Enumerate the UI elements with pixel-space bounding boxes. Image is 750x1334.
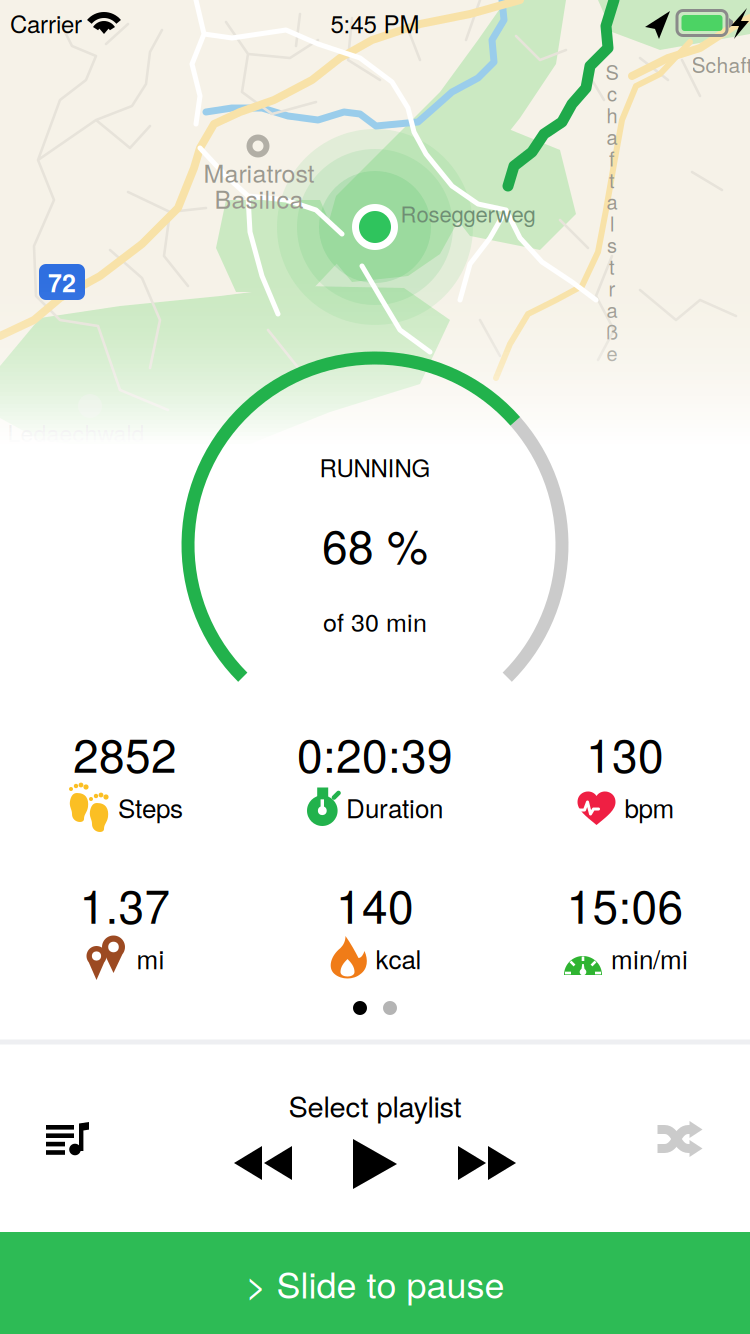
button[interactable]: Play <box>353 1139 397 1189</box>
staticText: Roseggerweg <box>400 197 535 229</box>
staticText: bpm <box>624 788 674 826</box>
staticText: 130 <box>586 720 664 786</box>
staticText: 68 % <box>322 511 428 577</box>
staticText: Carrier <box>10 6 82 40</box>
staticText: h <box>606 100 617 129</box>
staticText: c <box>607 79 617 107</box>
staticText: kcal <box>375 939 421 977</box>
button[interactable]: > Slide to pause <box>0 1232 750 1334</box>
staticText: Basilica <box>214 180 303 216</box>
staticText: 0:20:39 <box>297 720 453 786</box>
staticText: RUNNING <box>319 450 430 484</box>
staticText: 15:06 <box>566 871 683 937</box>
staticText: S <box>605 57 618 86</box>
staticText: Ledaechwald <box>7 415 144 448</box>
button[interactable]: Next track <box>458 1146 516 1180</box>
staticText: Select playlist <box>288 1084 461 1126</box>
staticText: a <box>606 295 617 324</box>
staticText: l <box>610 208 614 237</box>
staticText: t <box>609 252 615 280</box>
staticText: e <box>606 338 617 367</box>
staticText: ß <box>606 317 618 345</box>
staticText: 140 <box>336 871 414 937</box>
staticText: > Slide to pause <box>245 1257 504 1309</box>
staticText: 2852 <box>73 720 177 786</box>
staticText: r <box>608 273 615 302</box>
staticText: 5:45 PM <box>330 6 419 40</box>
staticText: 1.37 <box>79 871 170 937</box>
staticText: Steps <box>118 788 183 826</box>
staticText: min/mi <box>611 939 688 977</box>
staticText: Mariatrost <box>203 154 314 190</box>
staticText: a <box>606 122 617 150</box>
staticText: of 30 min <box>323 603 427 639</box>
staticText: a <box>606 187 617 215</box>
staticText: mi <box>136 939 164 977</box>
button[interactable]: Playlist <box>46 1123 90 1155</box>
staticText: s <box>607 230 617 259</box>
staticText: Duration <box>346 788 443 826</box>
staticText: 72 <box>48 264 76 300</box>
staticText: t <box>609 165 615 194</box>
staticText: Schaft <box>691 49 750 79</box>
staticText: f <box>609 144 615 172</box>
button[interactable]: Previous track <box>234 1146 292 1180</box>
button[interactable]: Shuffle <box>657 1125 702 1153</box>
